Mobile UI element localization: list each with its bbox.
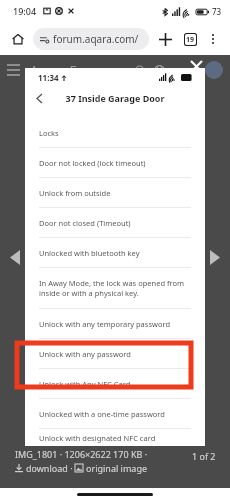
staticText: forum.aqara.com/t/au (53, 32, 142, 46)
staticText: 1 of 2 (192, 450, 216, 462)
staticText: 73 (212, 6, 222, 17)
button[interactable]: Door not locked (lock timeout) (31, 148, 199, 177)
button[interactable]: Home (7, 28, 29, 50)
staticText: 37 Inside Garage Door (65, 92, 165, 104)
staticText: Aqara Forum (30, 61, 110, 79)
staticText: Unlocked with bluetooth key (39, 248, 140, 258)
staticText: 11:34 (38, 72, 59, 83)
button[interactable]: Language (152, 63, 167, 78)
staticText: inside or with a physical key. (39, 288, 139, 298)
staticText: Door not closed (Timeout) (39, 218, 131, 228)
button[interactable]: Unlock with any password (31, 339, 199, 368)
staticText: 19:04 (13, 5, 37, 17)
staticText: Unlock from outside (39, 188, 111, 198)
button[interactable]: Back (31, 90, 47, 106)
button[interactable]: Unlocked with bluetooth key (31, 238, 199, 267)
button[interactable]: Unlock from outside (31, 178, 199, 207)
button[interactable]: Unlocked with a one-time password (31, 399, 199, 428)
button[interactable]: Unlock with designated NFC card (31, 429, 199, 446)
staticText: IMG_1801 · 1206×2622 170 KB · (15, 448, 148, 460)
staticText: Locks (39, 128, 59, 138)
button[interactable]: Close (186, 56, 206, 76)
button[interactable]: Unlock with Any NFC Card (31, 369, 199, 398)
button[interactable]: Locks (31, 118, 199, 147)
button[interactable]: More options (203, 29, 223, 49)
staticText: Unlocked with a one-time password (39, 409, 165, 419)
button[interactable]: In Away Mode, the lock was opened from (31, 268, 199, 308)
button[interactable]: Tabs (179, 28, 201, 50)
button[interactable]: Unlock with any temporary password (31, 309, 199, 338)
staticText: In Away Mode, the lock was opened from (39, 278, 185, 288)
button[interactable]: Next image (206, 248, 224, 266)
button[interactable]: Search (133, 63, 148, 78)
staticText: Unlock with any temporary password (39, 319, 171, 329)
button[interactable]: Door not closed (Timeout) (31, 208, 199, 237)
button[interactable]: Previous image (6, 248, 24, 266)
staticText: original image (86, 462, 148, 474)
staticText: Door not locked (lock timeout) (39, 158, 146, 168)
staticText: Unlock with any password (39, 349, 131, 359)
button[interactable]: forum.aqara.com/t/au (33, 28, 149, 50)
staticText: Unlock with Any NFC Card (39, 379, 131, 389)
staticText: download · (26, 462, 75, 474)
staticText: Unlock with designated NFC card (39, 433, 156, 443)
button[interactable]: New tab (154, 28, 176, 50)
staticText: 19 (186, 35, 195, 45)
